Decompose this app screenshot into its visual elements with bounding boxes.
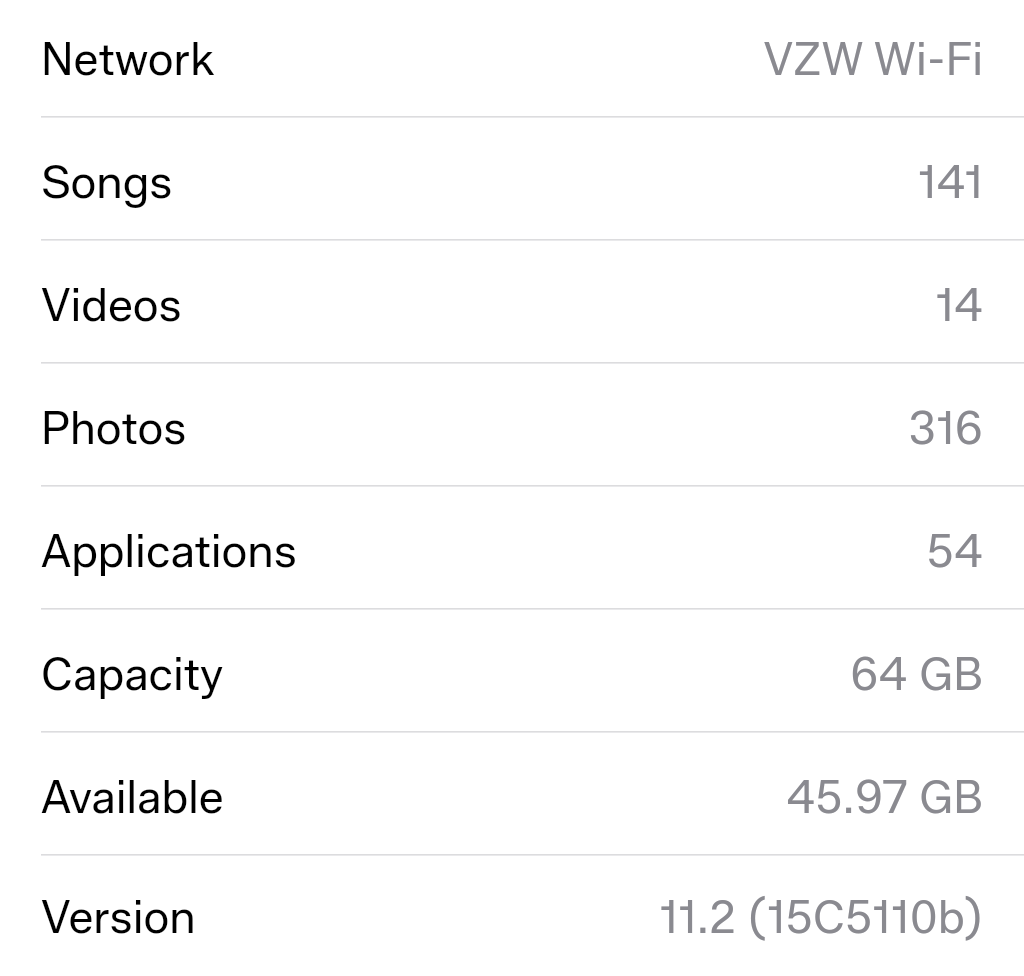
staticText: 11.2 (15C5110b)	[659, 890, 983, 944]
staticText: 54	[926, 524, 983, 578]
staticText: Videos	[41, 278, 182, 332]
staticText: 45.97 GB	[786, 770, 983, 824]
button[interactable]: Songs	[0, 118, 1024, 239]
staticText: Songs	[41, 155, 173, 209]
button[interactable]: Photos	[0, 364, 1024, 485]
staticText: 316	[908, 401, 983, 455]
staticText: Network	[41, 32, 215, 86]
button[interactable]: Capacity	[0, 610, 1024, 731]
staticText: Capacity	[41, 647, 224, 701]
button[interactable]: Videos	[0, 241, 1024, 362]
staticText: 141	[917, 155, 983, 209]
staticText: VZW Wi-Fi	[763, 32, 983, 86]
button[interactable]: Version	[0, 856, 1024, 971]
staticText: Available	[41, 770, 224, 824]
staticText: 64 GB	[850, 647, 983, 701]
staticText: Version	[41, 890, 196, 944]
staticText: Applications	[41, 524, 297, 578]
button[interactable]: Applications	[0, 487, 1024, 608]
button[interactable]: Network	[0, 0, 1024, 116]
staticText: 14	[935, 278, 983, 332]
staticText: Photos	[41, 401, 187, 455]
button[interactable]: Available	[0, 733, 1024, 854]
